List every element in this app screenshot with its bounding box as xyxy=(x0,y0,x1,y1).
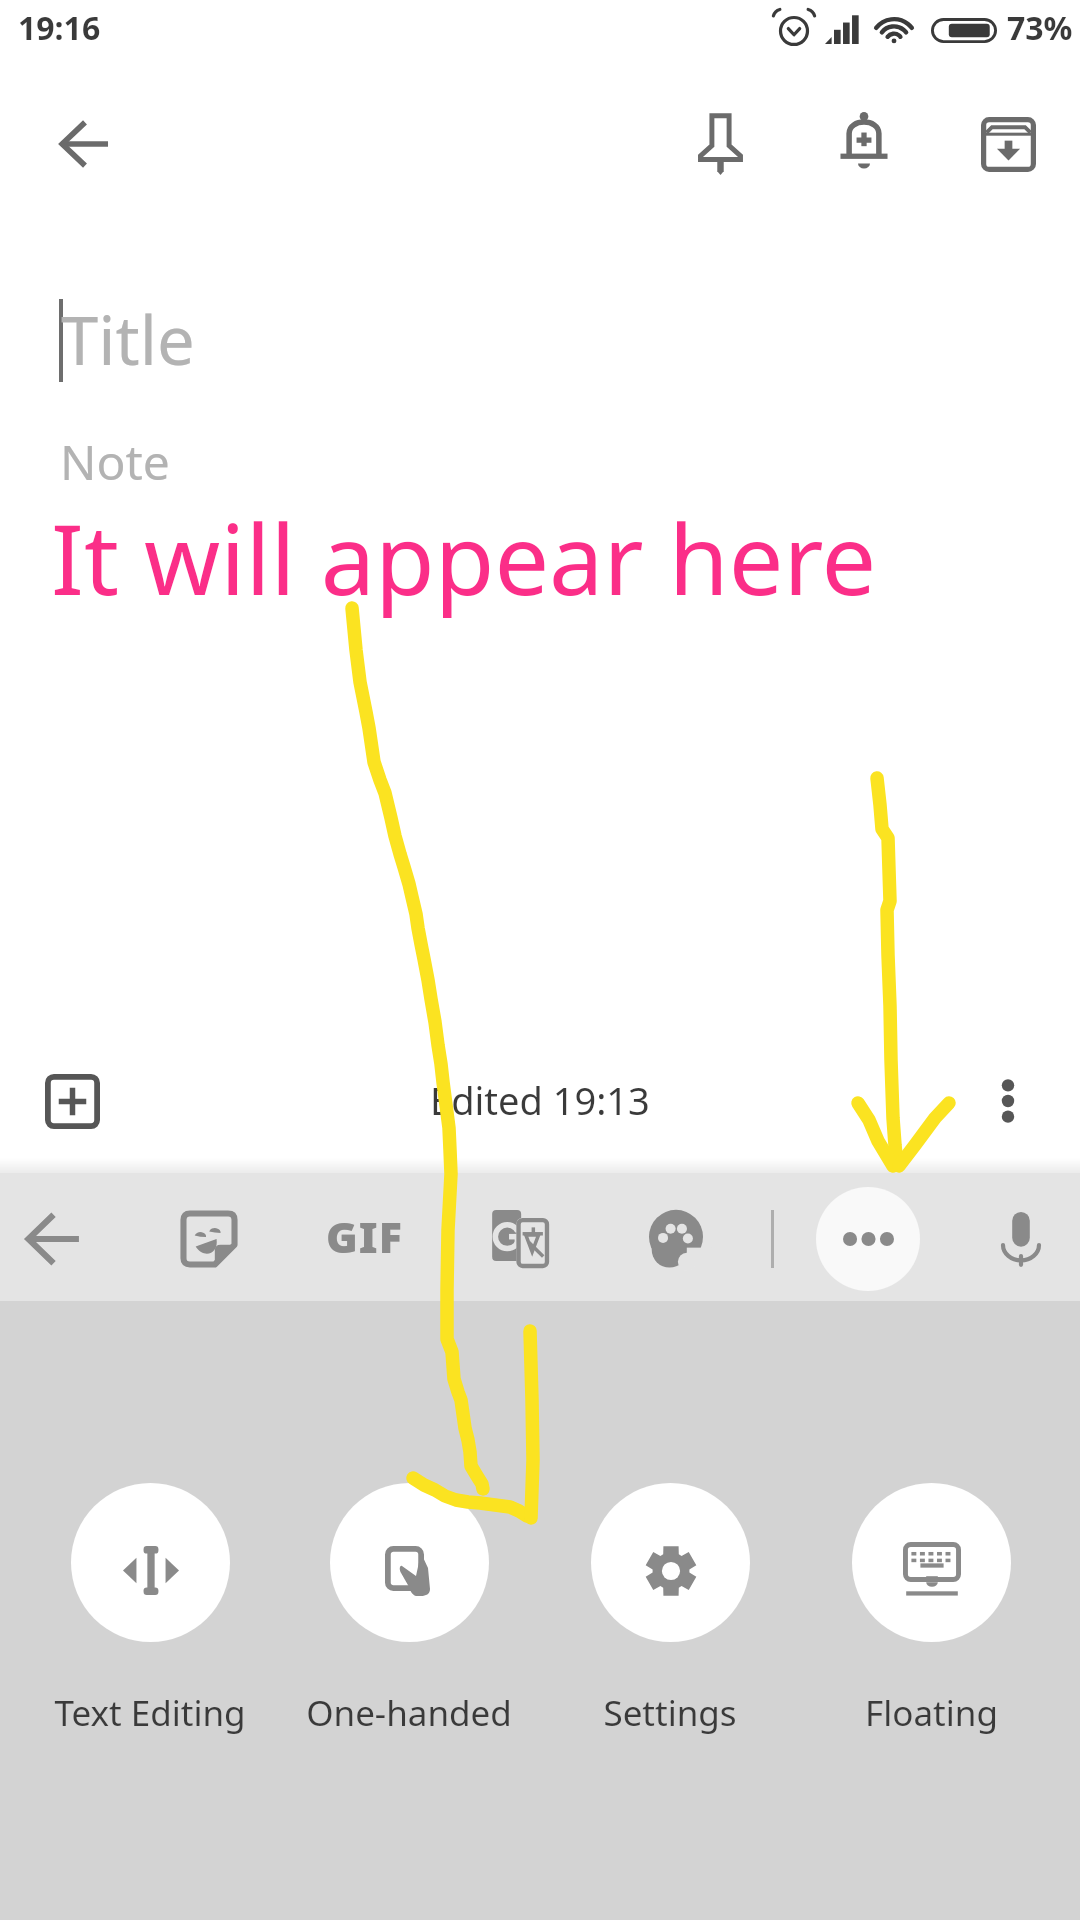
staticText: Text Editing xyxy=(54,1689,246,1737)
button[interactable]: Voice input xyxy=(966,1184,1076,1294)
staticText: 73% xyxy=(1007,6,1073,50)
staticText: Settings xyxy=(603,1689,737,1737)
button[interactable]: Theme xyxy=(621,1184,731,1294)
staticText: Note xyxy=(60,429,170,494)
button[interactable]: Stickers xyxy=(154,1184,264,1294)
button[interactable]: Archive xyxy=(956,92,1060,196)
button[interactable]: Translate xyxy=(465,1184,575,1294)
staticText: 19:16 xyxy=(18,6,101,50)
button[interactable]: More options xyxy=(960,1053,1056,1149)
button[interactable]: Back xyxy=(32,92,136,196)
staticText: Edited 19:13 xyxy=(430,1074,650,1126)
staticText: GIF xyxy=(326,1207,403,1266)
button[interactable]: Floating xyxy=(801,1483,1061,1737)
button[interactable]: More keyboard options xyxy=(816,1187,920,1291)
staticText: Floating xyxy=(865,1689,998,1737)
staticText: One-handed xyxy=(306,1689,512,1737)
staticText: It will appear here xyxy=(51,491,877,623)
button[interactable]: Reminder xyxy=(812,92,916,196)
button[interactable]: Back xyxy=(0,1184,108,1294)
staticText: Title xyxy=(61,293,195,384)
button[interactable]: One-handed xyxy=(279,1483,539,1737)
button[interactable]: Add xyxy=(24,1053,120,1149)
button[interactable]: Text Editing xyxy=(20,1483,280,1737)
button[interactable]: Pin xyxy=(668,92,772,196)
button[interactable]: GIF xyxy=(309,1181,419,1291)
button[interactable]: Settings xyxy=(540,1483,800,1737)
